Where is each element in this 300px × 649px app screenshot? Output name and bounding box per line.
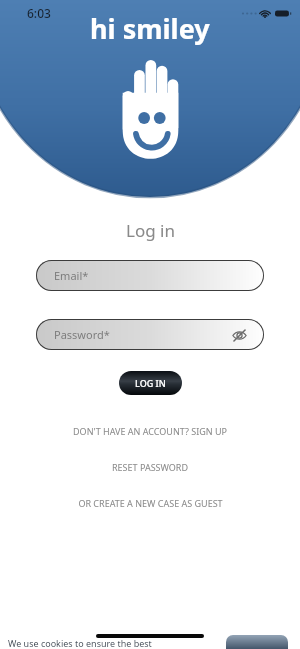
button[interactable]: OR CREATE A NEW CASE AS GUEST	[0, 495, 300, 511]
button[interactable]: Accept cookies	[226, 635, 288, 649]
button[interactable]: Password*	[36, 319, 264, 350]
button[interactable]: Show password	[229, 325, 249, 345]
staticText: Password*	[54, 327, 110, 342]
staticText: RESET PASSWORD	[112, 461, 188, 473]
button[interactable]: DON'T HAVE AN ACCOUNT? SIGN UP	[0, 423, 300, 439]
button[interactable]: LOG IN	[119, 371, 182, 395]
button[interactable]: Email*	[36, 260, 264, 291]
staticText: DON'T HAVE AN ACCOUNT? SIGN UP	[73, 425, 227, 437]
staticText: LOG IN	[135, 377, 166, 389]
staticText: Log in	[126, 219, 175, 242]
staticText: 6:03	[27, 5, 51, 21]
button[interactable]: RESET PASSWORD	[0, 459, 300, 475]
staticText: We use cookies to ensure the best	[8, 637, 152, 649]
staticText: OR CREATE A NEW CASE AS GUEST	[78, 497, 223, 509]
staticText: hi smiley	[90, 10, 210, 47]
staticText: Email*	[54, 268, 89, 283]
